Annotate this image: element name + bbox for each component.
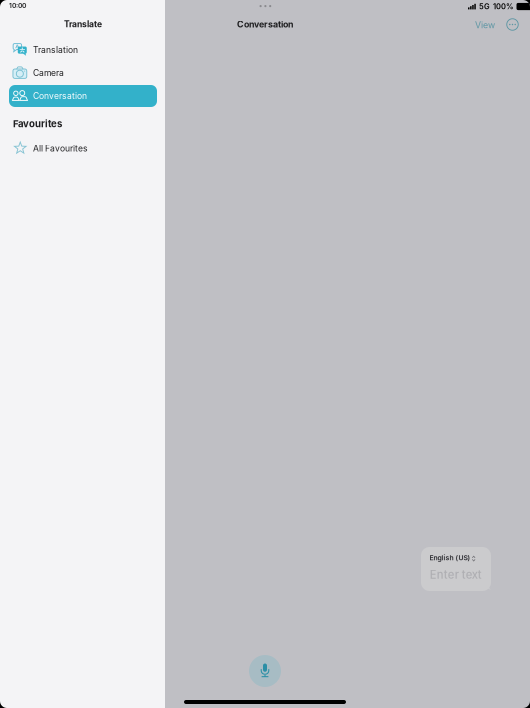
- staticText: 10:00: [9, 2, 26, 10]
- staticText: Favourites: [13, 118, 62, 130]
- staticText: 100%: [493, 2, 513, 11]
- button[interactable]: Camera: [9, 62, 157, 84]
- staticText: 5G: [479, 2, 490, 11]
- button[interactable]: Record: [249, 655, 281, 687]
- staticText: Translate: [64, 19, 102, 29]
- staticText: Conversation: [33, 91, 87, 101]
- staticText: View: [475, 20, 495, 30]
- button[interactable]: Conversation: [9, 85, 157, 107]
- button[interactable]: More options: [506, 18, 519, 31]
- staticText: All Favourites: [33, 143, 88, 154]
- button[interactable]: Translation: [9, 39, 157, 61]
- button[interactable]: View: [473, 18, 497, 32]
- staticText: Translation: [33, 45, 78, 55]
- staticText: Conversation: [237, 19, 293, 30]
- button[interactable]: All Favourites: [9, 137, 157, 159]
- staticText: Enter text: [430, 568, 482, 582]
- staticText: English (US): [430, 554, 471, 562]
- staticText: Camera: [33, 68, 64, 78]
- button[interactable]: English (US): [421, 547, 491, 591]
